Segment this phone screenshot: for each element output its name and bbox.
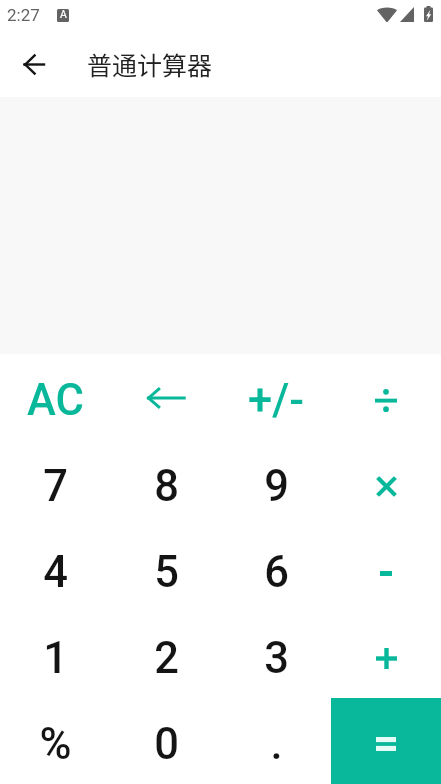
staticText: 3: [264, 633, 289, 684]
staticText: +/-: [248, 375, 304, 426]
button[interactable]: 7: [0, 440, 111, 526]
button[interactable]: 0: [111, 698, 221, 784]
button[interactable]: 9: [221, 440, 331, 526]
staticText: AC: [27, 375, 84, 426]
button[interactable]: AC: [0, 354, 111, 440]
button[interactable]: Multiply: [331, 440, 441, 526]
button[interactable]: 4: [0, 526, 111, 612]
button[interactable]: 6: [221, 526, 331, 612]
staticText: 6: [264, 547, 289, 598]
other: Wi-Fi: [377, 7, 397, 22]
staticText: 1: [43, 633, 68, 684]
button[interactable]: Add: [331, 612, 441, 698]
staticText: A: [60, 9, 67, 20]
button[interactable]: Equals: [331, 698, 441, 784]
staticText: 普通计算器: [87, 46, 213, 82]
staticText: 0: [154, 719, 179, 770]
staticText: 2: [154, 633, 179, 684]
button[interactable]: .: [221, 698, 331, 784]
staticText: %: [39, 719, 72, 770]
staticText: 4: [43, 547, 68, 598]
button[interactable]: 8: [111, 440, 221, 526]
button[interactable]: 5: [111, 526, 221, 612]
button[interactable]: Back: [12, 42, 56, 86]
button[interactable]: %: [0, 698, 111, 784]
button[interactable]: 3: [221, 612, 331, 698]
other: Mobile signal: [400, 7, 414, 22]
staticText: 9: [264, 461, 289, 512]
staticText: .: [270, 719, 283, 770]
other: Battery charging: [424, 6, 433, 22]
staticText: 2:27: [7, 5, 40, 25]
button[interactable]: +/-: [221, 354, 331, 440]
staticText: 8: [154, 461, 179, 512]
button[interactable]: Subtract: [331, 526, 441, 612]
staticText: 5: [154, 547, 179, 598]
button[interactable]: 2: [111, 612, 221, 698]
button[interactable]: 1: [0, 612, 111, 698]
button[interactable]: Backspace: [111, 354, 221, 440]
button[interactable]: Divide: [331, 354, 441, 440]
staticText: 7: [43, 461, 68, 512]
